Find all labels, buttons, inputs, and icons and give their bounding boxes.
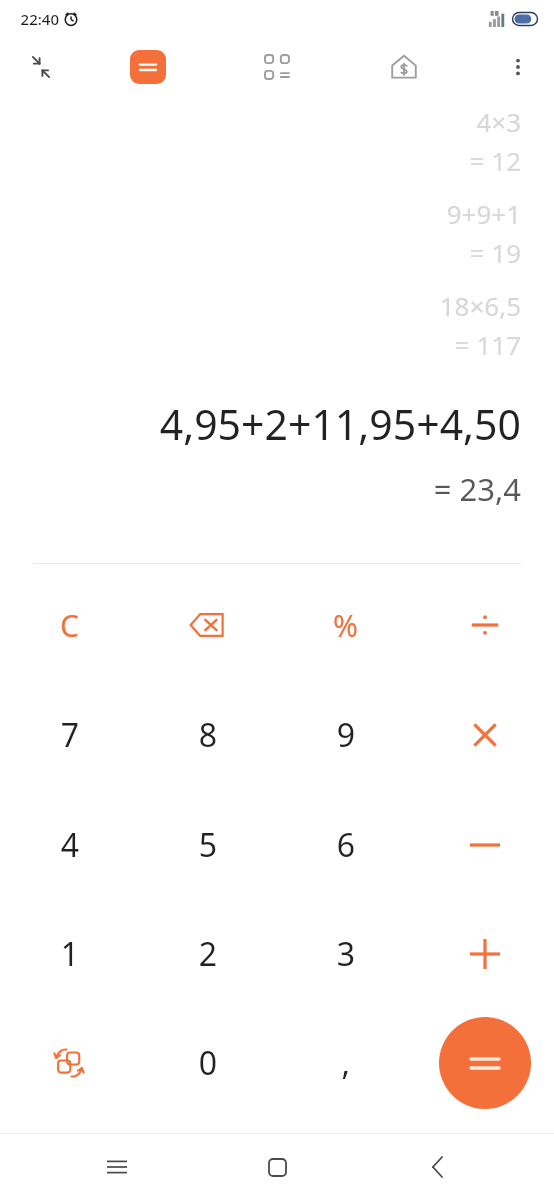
button[interactable] <box>415 570 554 680</box>
button[interactable]: % <box>276 570 415 680</box>
button[interactable]: , <box>276 1008 415 1117</box>
staticText: 4×3 <box>476 104 521 139</box>
staticText: % <box>333 605 358 646</box>
button[interactable]: Loan calculator <box>378 41 430 93</box>
button[interactable]: 8 <box>138 680 276 790</box>
staticText: 9 <box>336 713 355 757</box>
staticText: 4 <box>60 823 79 867</box>
staticText: = 117 <box>454 327 521 362</box>
button[interactable]: Back <box>410 1140 464 1194</box>
staticText: C <box>60 605 79 646</box>
button[interactable]: Calculator mode <box>128 47 168 87</box>
staticText: = 23,4 <box>433 468 521 510</box>
button[interactable]: 0 <box>138 1008 276 1117</box>
button[interactable]: Equals <box>415 1008 554 1117</box>
staticText: 2 <box>198 932 217 976</box>
button[interactable] <box>415 899 554 1008</box>
staticText: 4,95+2+11,95+4,50 <box>159 396 521 452</box>
staticText: 6 <box>336 823 355 867</box>
staticText: 7 <box>60 713 79 757</box>
button[interactable]: 4 <box>0 790 138 899</box>
staticText: 3 <box>336 932 355 976</box>
staticText: 0 <box>198 1041 217 1085</box>
button[interactable]: 6 <box>276 790 415 899</box>
button[interactable]: 5 <box>138 790 276 899</box>
staticText: 5 <box>198 823 217 867</box>
staticText: 8 <box>198 713 217 757</box>
button[interactable] <box>415 680 554 790</box>
button[interactable]: 7 <box>0 680 138 790</box>
button[interactable]: Collapse <box>16 42 66 92</box>
staticText: = 12 <box>469 143 521 178</box>
staticText: 22:40 <box>20 9 59 29</box>
button[interactable]: 1 <box>0 899 138 1008</box>
button[interactable]: Unit converter <box>252 42 302 92</box>
staticText: , <box>341 1041 350 1085</box>
button[interactable]: Home <box>250 1140 304 1194</box>
staticText: 1 <box>60 932 79 976</box>
staticText: 18×6,5 <box>439 288 521 323</box>
button[interactable] <box>415 790 554 899</box>
button[interactable]: Backspace <box>138 570 276 680</box>
button[interactable]: 3 <box>276 899 415 1008</box>
button[interactable]: More options <box>494 43 542 91</box>
button[interactable]: Convert <box>0 1008 138 1117</box>
button[interactable]: C <box>0 570 138 680</box>
button[interactable]: 2 <box>138 899 276 1008</box>
staticText: = 19 <box>469 235 521 270</box>
staticText: 9+9+1 <box>446 196 521 231</box>
button[interactable]: 9 <box>276 680 415 790</box>
button[interactable]: Recent apps <box>90 1140 144 1194</box>
